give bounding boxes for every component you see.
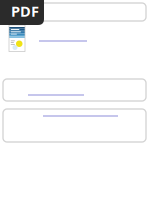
button[interactable]	[3, 3, 146, 21]
button[interactable]	[3, 79, 146, 101]
button[interactable]: PDF	[0, 0, 44, 25]
staticText: PDF	[11, 1, 39, 21]
button[interactable]	[3, 109, 146, 142]
